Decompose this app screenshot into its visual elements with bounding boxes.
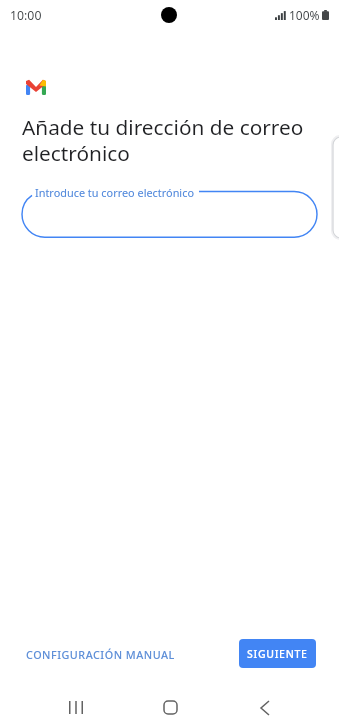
button[interactable]: SIGUIENTE [239, 639, 316, 668]
button[interactable]: Back [240, 686, 289, 728]
button[interactable]: Introduce tu correo electrónico [22, 184, 317, 238]
staticText: SIGUIENTE [247, 647, 308, 661]
button[interactable]: Home [146, 686, 195, 728]
staticText: Añade tu dirección de correo electrónico [22, 113, 309, 168]
staticText: Introduce tu correo electrónico [35, 185, 194, 200]
button[interactable]: Recent apps [51, 686, 100, 728]
button[interactable]: CONFIGURACIÓN MANUAL [18, 637, 183, 671]
staticText: 10:00 [10, 7, 42, 24]
staticText: CONFIGURACIÓN MANUAL [26, 647, 175, 662]
staticText: 100% [289, 7, 320, 23]
